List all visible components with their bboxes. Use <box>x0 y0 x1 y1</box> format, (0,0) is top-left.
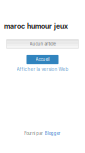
staticText: Afficher la version Web <box>16 66 68 72</box>
button[interactable]: Accueil <box>26 55 58 64</box>
staticText: Aucun article <box>29 41 55 47</box>
staticText: Accueil <box>35 57 49 62</box>
staticText: Blogger <box>45 131 61 136</box>
button[interactable]: Blogger <box>45 131 61 136</box>
staticText: Fourni par <box>24 131 43 136</box>
staticText: maroc humour jeux <box>4 22 68 30</box>
button[interactable]: Afficher la version Web <box>0 66 85 72</box>
